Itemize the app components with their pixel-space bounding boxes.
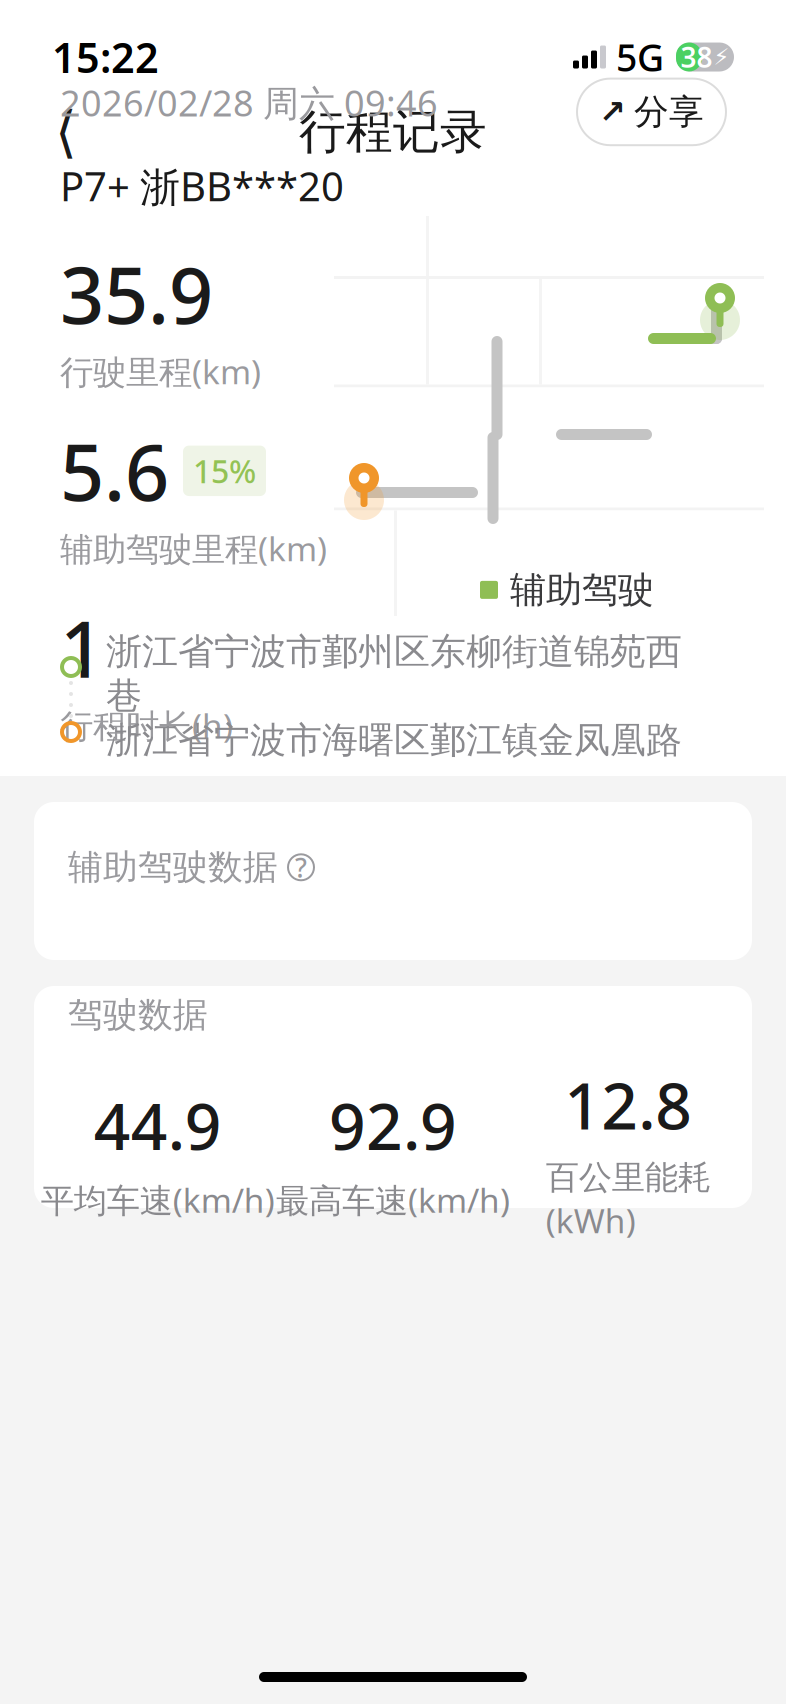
staticText: 5G [616, 32, 664, 82]
button[interactable]: 关于辅助驾驶数据 [288, 854, 314, 880]
button[interactable]: ↗ [577, 79, 726, 145]
staticText: ? [295, 850, 307, 885]
staticText: 浙江省宁波市鄞州区东柳街道锦苑西巷 [106, 630, 682, 718]
staticText: 辅助驾驶里程(km) [60, 526, 327, 570]
button[interactable]: Back [28, 94, 104, 170]
staticText: 驾驶数据 [68, 994, 208, 1036]
staticText: ⚡︎ [713, 44, 729, 70]
staticText: 辅助驾驶数据 [68, 846, 278, 889]
staticText: 行驶里程(km) [60, 349, 261, 393]
staticText: 最高车速(km/h) [276, 1178, 510, 1222]
staticText: 辅助驾驶 [510, 568, 654, 612]
staticText: 浙江省宁波市海曙区鄞江镇金凤凰路 [106, 718, 682, 762]
staticText: 行程记录 [299, 103, 487, 161]
staticText: ↗ [599, 94, 626, 130]
staticText: 分享 [634, 91, 704, 133]
staticText: 行程时长(h) [60, 703, 233, 747]
staticText: P7+ 浙BB***20 [60, 159, 344, 212]
staticText: 35.9 [60, 242, 213, 345]
staticText: 15:22 [52, 30, 159, 84]
staticText: 5.6 [60, 419, 169, 522]
staticText: 38 [680, 38, 712, 76]
staticText: 92.9 [329, 1083, 457, 1168]
staticText: 44.9 [94, 1083, 222, 1168]
staticText: 12.8 [564, 1062, 692, 1147]
staticText: 1 [60, 596, 104, 699]
staticText: 15% [193, 450, 256, 492]
staticText: 2026/02/28 周六 09:46 [60, 79, 438, 126]
staticText: 百公里能耗(kWh) [546, 1157, 711, 1242]
staticText: ⟨ [55, 100, 77, 164]
staticText: 平均车速(km/h) [41, 1178, 275, 1222]
